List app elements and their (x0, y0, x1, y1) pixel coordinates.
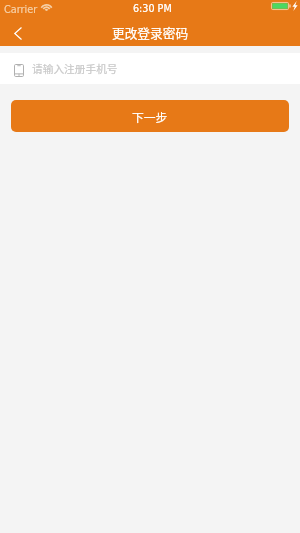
staticText: 下一步 (132, 108, 168, 125)
staticText: 6:30 PM (133, 3, 172, 14)
staticText: 更改登录密码 (112, 23, 189, 41)
button[interactable]: 请输入注册手机号 (0, 53, 300, 84)
staticText: 请输入注册手机号 (32, 61, 118, 76)
staticText: Carrier (4, 4, 38, 15)
button[interactable]: Back (0, 20, 36, 46)
button[interactable]: 下一步 (11, 100, 289, 132)
